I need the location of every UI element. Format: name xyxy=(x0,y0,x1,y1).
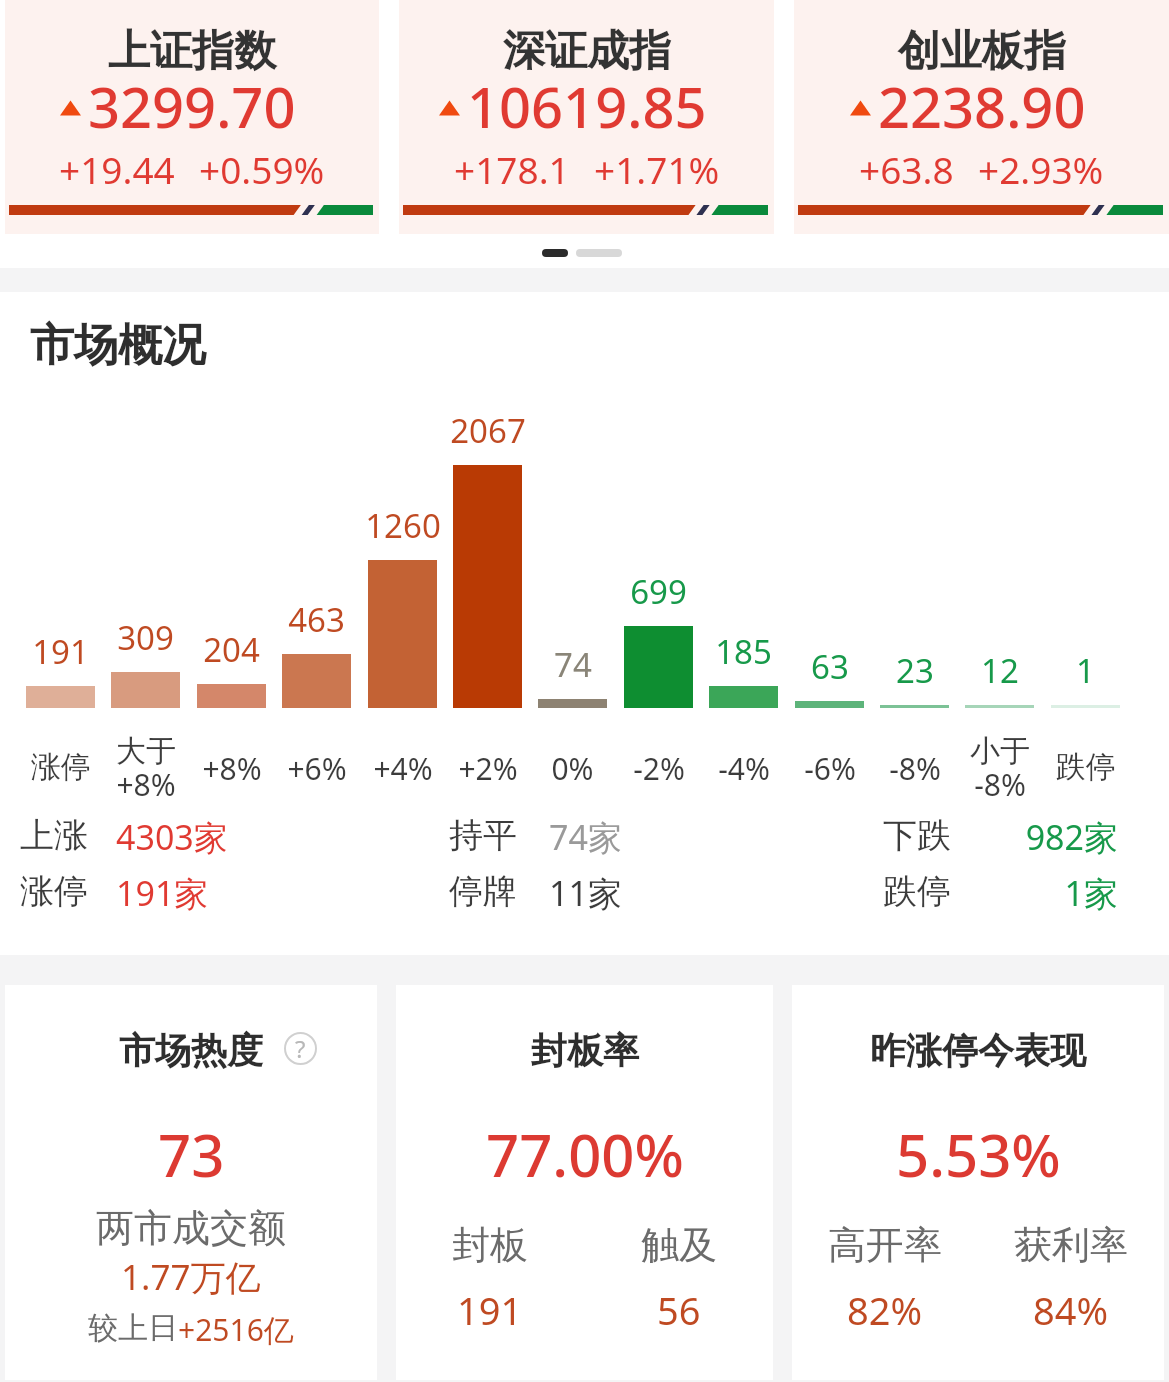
staticText: 191家 xyxy=(116,870,209,916)
staticText: 2238.90 xyxy=(878,68,1086,144)
staticText: +8% xyxy=(202,748,262,789)
button[interactable]: 创业板指 xyxy=(794,0,1169,234)
staticText: 触及 xyxy=(641,1221,717,1269)
staticText: 77.00% xyxy=(486,1115,684,1194)
staticText: 市场热度 xyxy=(119,1028,263,1073)
button[interactable]: Page 1 xyxy=(542,249,568,257)
staticText: +8% xyxy=(116,764,176,805)
staticText: 停牌 xyxy=(449,870,517,913)
staticText: 4303家 xyxy=(116,814,228,860)
staticText: 82% xyxy=(847,1284,923,1336)
staticText: +19.44 xyxy=(59,144,175,194)
staticText: 3299.70 xyxy=(88,68,296,144)
staticText: 大于 xyxy=(116,732,176,770)
staticText: 两市成交额 xyxy=(96,1204,286,1252)
staticText: 上证指数 xyxy=(108,25,276,78)
staticText: 2067 xyxy=(450,408,526,453)
staticText: 较上日 xyxy=(88,1309,178,1347)
button[interactable]: 市场热度 xyxy=(5,985,377,1380)
staticText: -6% xyxy=(804,748,856,789)
staticText: 5.53% xyxy=(896,1115,1061,1194)
staticText: 74 xyxy=(554,642,592,687)
staticText: +0.59% xyxy=(199,144,325,194)
button[interactable]: 上证指数 xyxy=(5,0,379,234)
staticText: 涨停 xyxy=(31,748,91,786)
staticText: 84% xyxy=(1033,1284,1109,1336)
staticText: -2% xyxy=(633,748,685,789)
staticText: -4% xyxy=(718,748,770,789)
staticText: 获利率 xyxy=(1014,1221,1128,1269)
staticText: 23 xyxy=(896,648,934,693)
staticText: 11家 xyxy=(549,870,622,916)
staticText: 191 xyxy=(32,629,89,674)
staticText: 封板 xyxy=(452,1221,528,1269)
staticText: 市场概况 xyxy=(30,318,206,373)
button[interactable]: 封板率 xyxy=(396,985,773,1380)
staticText: 0% xyxy=(551,748,594,789)
staticText: 309 xyxy=(117,615,174,660)
staticText: +2% xyxy=(458,748,518,789)
staticText: 小于 xyxy=(970,732,1030,770)
staticText: +178.1 xyxy=(454,144,570,194)
staticText: 创业板指 xyxy=(898,25,1066,78)
staticText: 56 xyxy=(657,1284,701,1336)
staticText: +6% xyxy=(287,748,347,789)
button[interactable]: 市场概况 xyxy=(30,318,206,373)
staticText: +2.93% xyxy=(978,144,1104,194)
staticText: +1.71% xyxy=(594,144,720,194)
staticText: 1 xyxy=(1076,648,1095,693)
staticText: +4% xyxy=(373,748,433,789)
staticText: 463 xyxy=(288,597,345,642)
staticText: 昨涨停今表现 xyxy=(870,1028,1086,1073)
staticText: 涨停 xyxy=(20,870,88,913)
staticText: 封板率 xyxy=(531,1028,639,1073)
staticText: 73 xyxy=(158,1115,225,1194)
staticText: 204 xyxy=(203,627,260,672)
button[interactable]: Page 2 xyxy=(576,249,622,257)
staticText: 191 xyxy=(457,1284,523,1336)
staticText: 持平 xyxy=(449,814,517,857)
staticText: -8% xyxy=(974,764,1026,805)
staticText: 高开率 xyxy=(828,1221,942,1269)
staticText: 下跌 xyxy=(883,814,951,857)
staticText: 跌停 xyxy=(1056,748,1116,786)
staticText: -8% xyxy=(889,748,941,789)
staticText: 上涨 xyxy=(20,814,88,857)
staticText: 982家 xyxy=(1025,814,1118,860)
staticText: 1家 xyxy=(1064,870,1118,916)
staticText: 1260 xyxy=(365,503,441,548)
staticText: 10619.85 xyxy=(467,68,707,144)
staticText: +2516亿 xyxy=(178,1309,294,1350)
staticText: +63.8 xyxy=(859,144,954,194)
staticText: 63 xyxy=(811,644,849,689)
staticText: 12 xyxy=(981,648,1019,693)
staticText: 跌停 xyxy=(883,870,951,913)
staticText: 185 xyxy=(715,629,772,674)
staticText: 1.77万亿 xyxy=(121,1253,261,1301)
staticText: 74家 xyxy=(549,814,622,860)
button[interactable]: 昨涨停今表现 xyxy=(792,985,1164,1380)
staticText: 699 xyxy=(630,569,687,614)
button[interactable]: Help xyxy=(284,1032,317,1065)
button[interactable]: 深证成指 xyxy=(399,0,774,234)
staticText: 深证成指 xyxy=(503,25,671,78)
staticText: ? xyxy=(295,1032,306,1065)
